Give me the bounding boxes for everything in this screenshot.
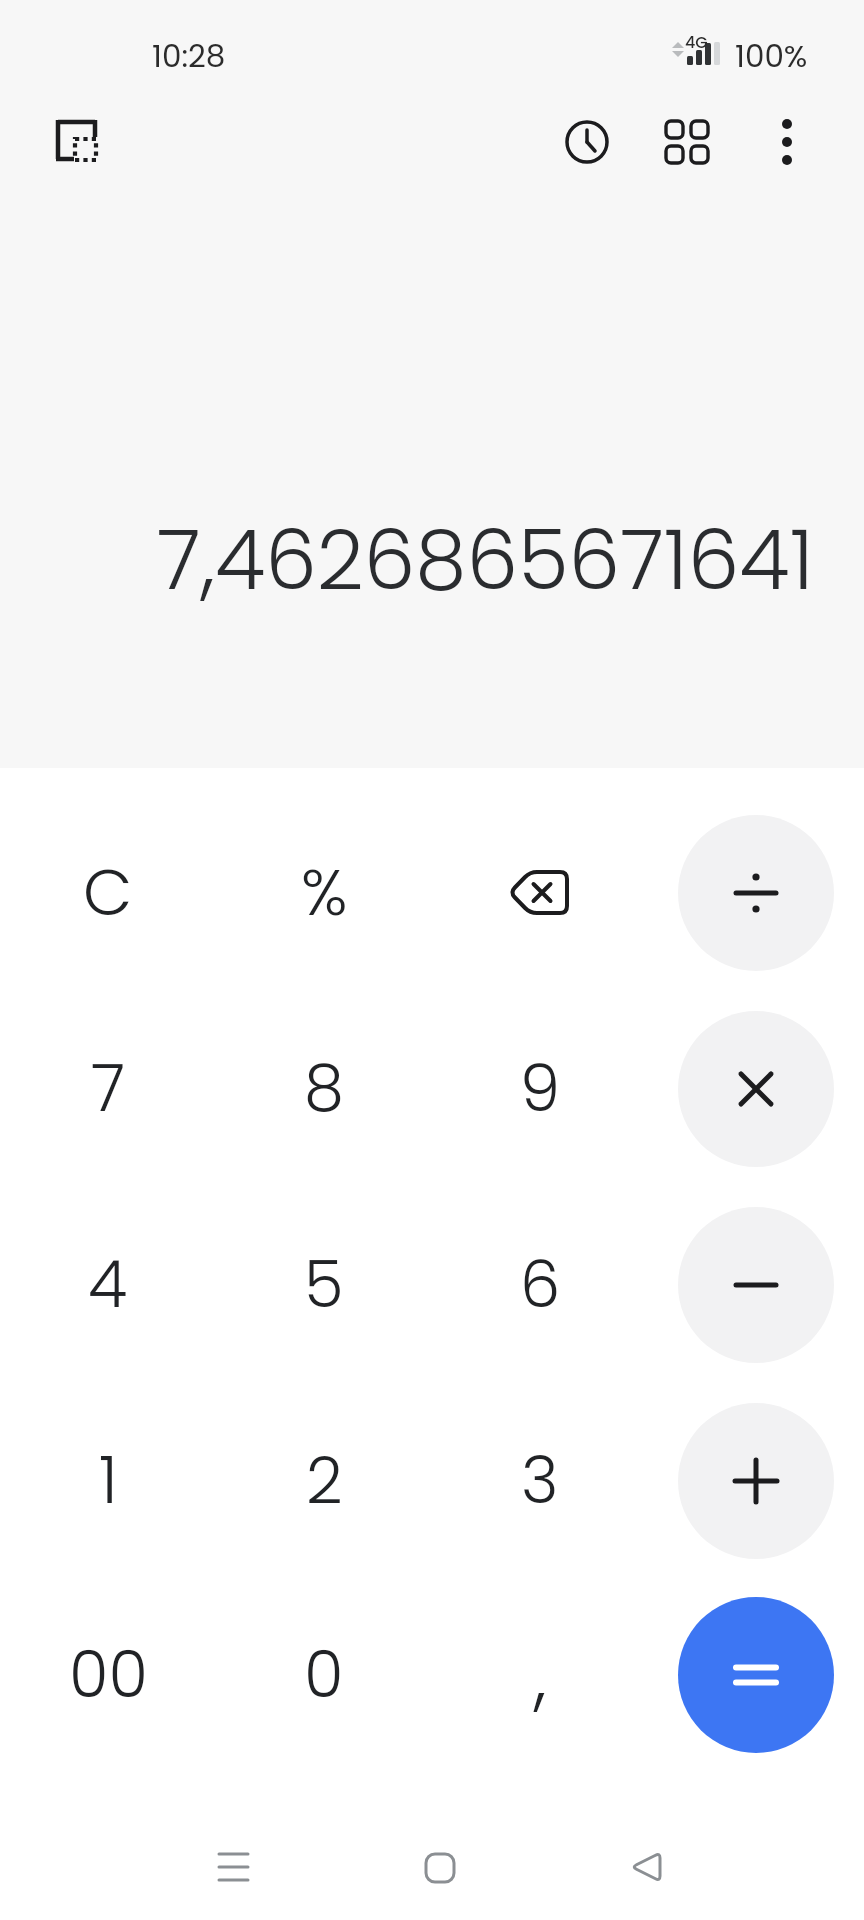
button[interactable]: 00 xyxy=(35,1602,181,1748)
button[interactable]: 3 xyxy=(467,1408,613,1554)
staticText: 6 xyxy=(520,1240,561,1330)
button[interactable]: 5 xyxy=(251,1212,397,1358)
button[interactable]: 8 xyxy=(251,1016,397,1162)
staticText: , xyxy=(534,1625,547,1726)
staticText: 10:28 xyxy=(152,34,226,77)
button[interactable] xyxy=(205,1839,261,1895)
staticText: 3 xyxy=(521,1436,559,1526)
staticText: C xyxy=(83,848,133,938)
staticText: 1 xyxy=(99,1436,118,1526)
button[interactable] xyxy=(678,815,834,971)
button[interactable] xyxy=(759,114,815,170)
staticText: 0 xyxy=(304,1630,344,1720)
staticText: 9 xyxy=(520,1044,560,1134)
button[interactable] xyxy=(678,1403,834,1559)
button[interactable]: 4 xyxy=(35,1212,181,1358)
button[interactable]: 2 xyxy=(251,1408,397,1554)
button[interactable] xyxy=(467,820,613,966)
staticText: 100% xyxy=(735,34,808,77)
button[interactable] xyxy=(678,1597,834,1753)
staticText: 7 xyxy=(91,1044,126,1134)
staticText: 4G xyxy=(685,31,708,53)
staticText: 4 xyxy=(88,1240,128,1330)
button[interactable]: 1 xyxy=(35,1408,181,1554)
staticText: % xyxy=(301,848,348,938)
button[interactable] xyxy=(659,114,715,170)
button[interactable] xyxy=(48,112,108,172)
button[interactable] xyxy=(678,1207,834,1363)
button[interactable] xyxy=(559,114,615,170)
staticText: 2 xyxy=(306,1436,343,1526)
button[interactable]: % xyxy=(251,820,397,966)
staticText: 5 xyxy=(304,1240,344,1330)
button[interactable]: 6 xyxy=(467,1212,613,1358)
staticText: 7,4626865671641 xyxy=(157,503,814,618)
button[interactable] xyxy=(678,1011,834,1167)
staticText: 00 xyxy=(69,1630,148,1720)
staticText: 8 xyxy=(304,1044,344,1134)
button[interactable] xyxy=(618,1839,674,1895)
button[interactable] xyxy=(412,1840,468,1896)
button[interactable]: 7 xyxy=(35,1016,181,1162)
button[interactable]: , xyxy=(467,1602,613,1748)
button[interactable]: C xyxy=(35,820,181,966)
button[interactable]: 0 xyxy=(251,1602,397,1748)
button[interactable]: 9 xyxy=(467,1016,613,1162)
